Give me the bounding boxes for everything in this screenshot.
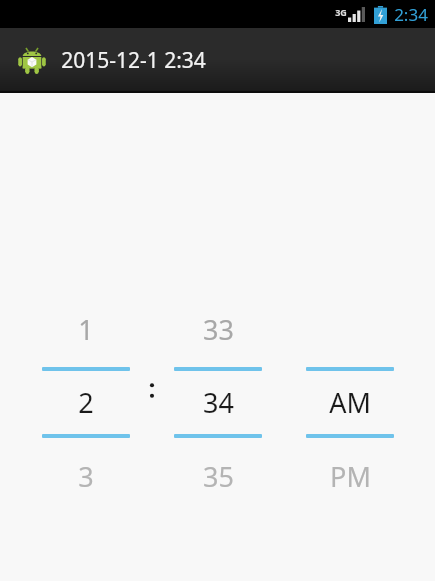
- staticText: 35: [203, 458, 234, 495]
- staticText: 33: [203, 311, 234, 348]
- staticText: AM: [329, 384, 371, 421]
- staticText: 2015-12-1 2:34: [61, 46, 206, 75]
- staticText: 2: [78, 384, 94, 421]
- staticText: 3: [78, 458, 94, 495]
- button[interactable]: Hour: [31, 291, 141, 514]
- staticText: PM: [330, 458, 371, 495]
- staticText: 2:34: [394, 3, 428, 26]
- staticText: 34: [203, 384, 234, 421]
- button[interactable]: AM PM: [295, 291, 405, 514]
- button[interactable]: Minute: [163, 291, 273, 514]
- staticText: 1: [78, 311, 94, 348]
- staticText: 3G: [335, 6, 347, 18]
